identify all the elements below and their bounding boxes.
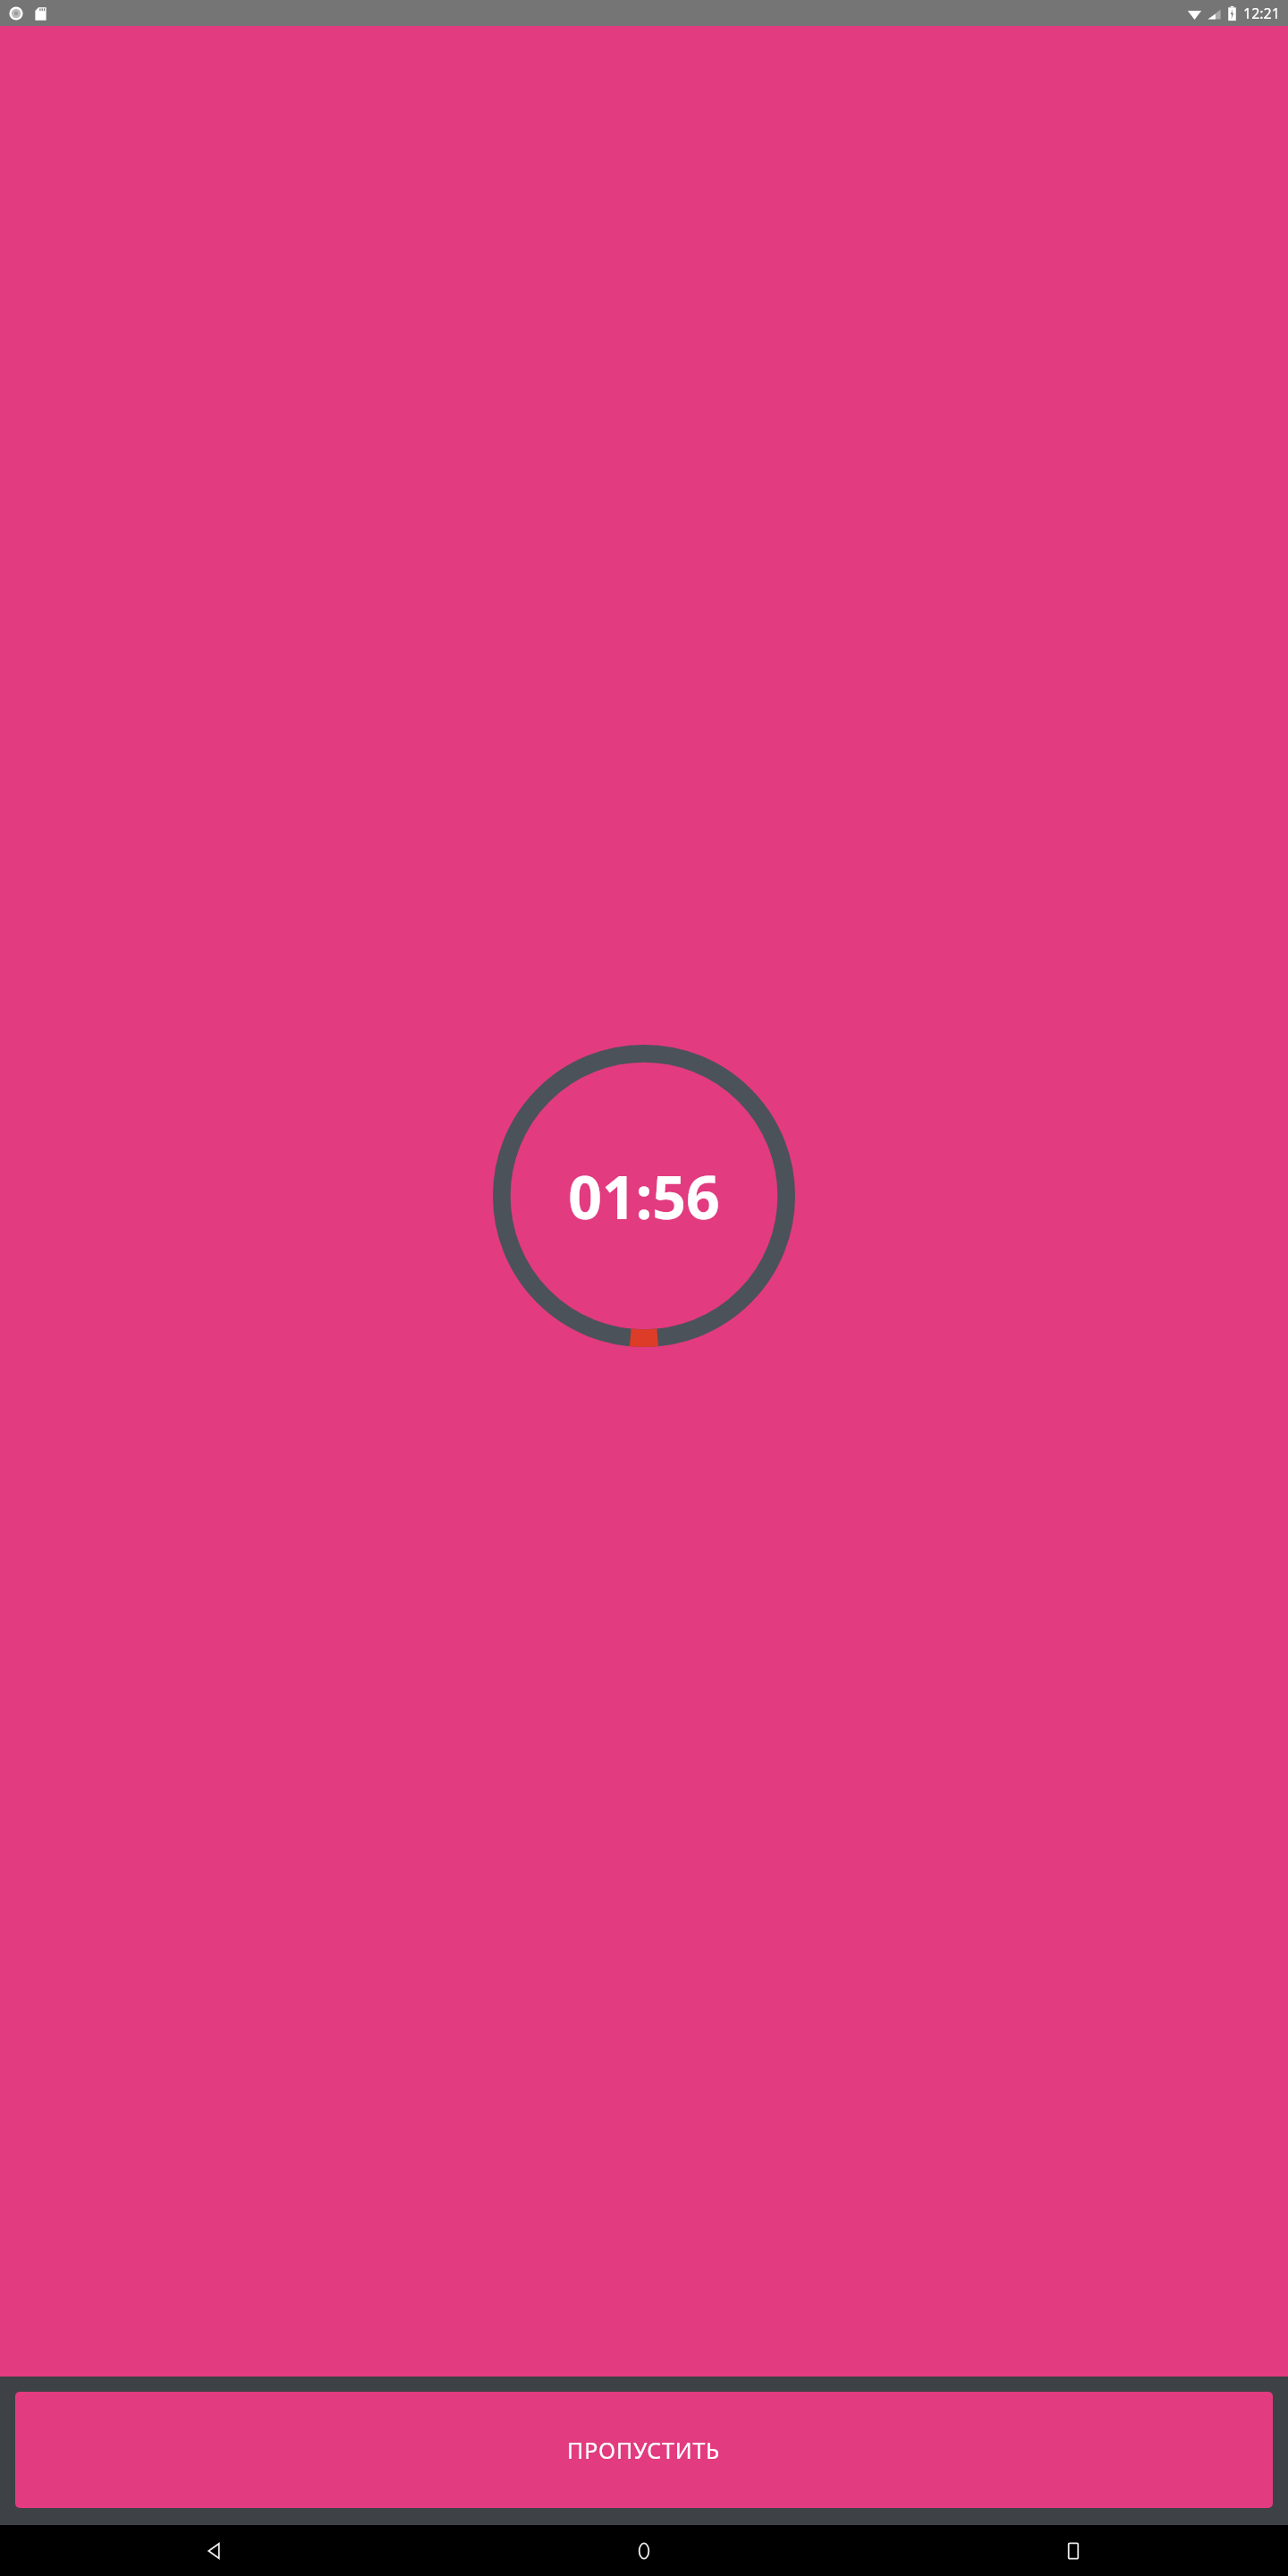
button[interactable]: Home <box>429 2525 859 2576</box>
button[interactable]: ПРОПУСТИТЬ <box>15 2392 1273 2508</box>
staticText: ПРОПУСТИТЬ <box>567 2435 721 2465</box>
staticText: 01:56 <box>568 1156 720 1236</box>
button[interactable]: Recent apps <box>859 2525 1288 2576</box>
button[interactable]: Back <box>0 2525 429 2576</box>
staticText: 12:21 <box>1243 4 1280 23</box>
